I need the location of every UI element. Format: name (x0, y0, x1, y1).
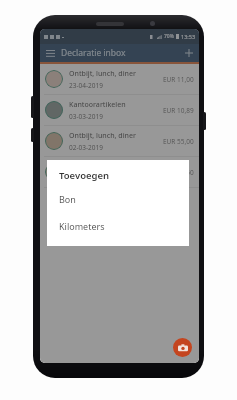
button[interactable]: Open navigation menu (43, 46, 57, 60)
staticText: Kantoorartikelen (69, 100, 126, 110)
staticText: EUR 10,89 (163, 106, 194, 115)
staticText: 28-02-2019 (69, 174, 103, 183)
button[interactable]: Ontbijt, lunch, diner (40, 64, 199, 94)
button[interactable]: Kilometers (47, 218, 189, 234)
staticText: Ontbijt, lunch, diner (69, 69, 136, 79)
staticText: 70% (164, 33, 174, 40)
button[interactable]: Kantoorartikelen (40, 95, 199, 125)
staticText: Declaratie inbox (61, 47, 126, 59)
staticText: 13:53 (181, 33, 196, 40)
staticText: EUR 55,00 (163, 137, 194, 146)
staticText: 02-03-2019 (69, 143, 103, 152)
staticText: Bon (59, 193, 76, 205)
staticText: Kilometers (59, 220, 105, 232)
staticText: EUR 11,00 (163, 75, 194, 84)
button[interactable]: Add (182, 46, 196, 60)
staticText: Ontbijt, lunch, diner (69, 131, 136, 141)
staticText: 23-04-2019 (69, 81, 103, 90)
button[interactable]: Bon (47, 191, 189, 207)
button[interactable]: Camera (173, 338, 192, 357)
staticText: Toevoegen (59, 169, 110, 182)
button[interactable]: Ontbijt, lunch, diner (40, 126, 199, 156)
button[interactable]: Hotel, verblijf (40, 157, 199, 187)
staticText: EUR 89,50 (163, 168, 194, 177)
staticText: 03-03-2019 (69, 112, 103, 121)
